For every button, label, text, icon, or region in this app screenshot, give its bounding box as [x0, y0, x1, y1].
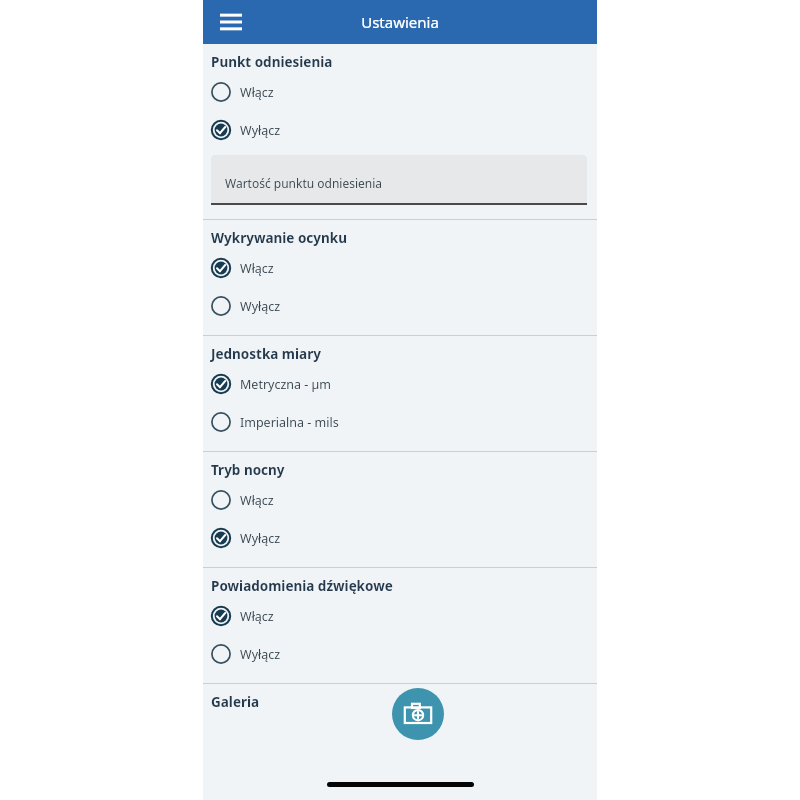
staticText: Tryb nocny [211, 461, 285, 479]
staticText: Wartość punktu odniesienia [225, 175, 383, 191]
staticText: Wyłącz [240, 530, 281, 547]
button[interactable]: Wartość punktu odniesienia [211, 155, 587, 205]
button[interactable]: Wyłącz [203, 287, 597, 325]
staticText: Wyłącz [240, 646, 281, 663]
staticText: Powiadomienia dźwiękowe [211, 577, 393, 595]
button[interactable]: Take photo [392, 688, 444, 740]
button[interactable]: Włącz [203, 249, 597, 287]
staticText: Wyłącz [240, 122, 281, 139]
staticText: Punkt odniesienia [211, 53, 333, 71]
staticText: Metryczna - µm [240, 376, 332, 393]
staticText: Jednostka miary [211, 345, 321, 363]
staticText: Galeria [211, 693, 260, 711]
button[interactable]: Włącz [203, 73, 597, 111]
button[interactable]: Wyłącz [203, 519, 597, 557]
button[interactable]: Imperialna - mils [203, 403, 597, 441]
button[interactable]: Wyłącz [203, 635, 597, 673]
staticText: Włącz [240, 608, 274, 625]
staticText: Włącz [240, 492, 274, 509]
button[interactable]: Włącz [203, 481, 597, 519]
button[interactable]: Wyłącz [203, 111, 597, 149]
staticText: Ustawienia [361, 12, 439, 32]
staticText: Imperialna - mils [240, 414, 339, 431]
button[interactable]: Włącz [203, 597, 597, 635]
staticText: Włącz [240, 84, 274, 101]
button[interactable]: Metryczna - µm [203, 365, 597, 403]
staticText: Wykrywanie ocynku [211, 229, 347, 247]
button[interactable]: Menu [213, 4, 249, 40]
staticText: Wyłącz [240, 298, 281, 315]
staticText: Włącz [240, 260, 274, 277]
